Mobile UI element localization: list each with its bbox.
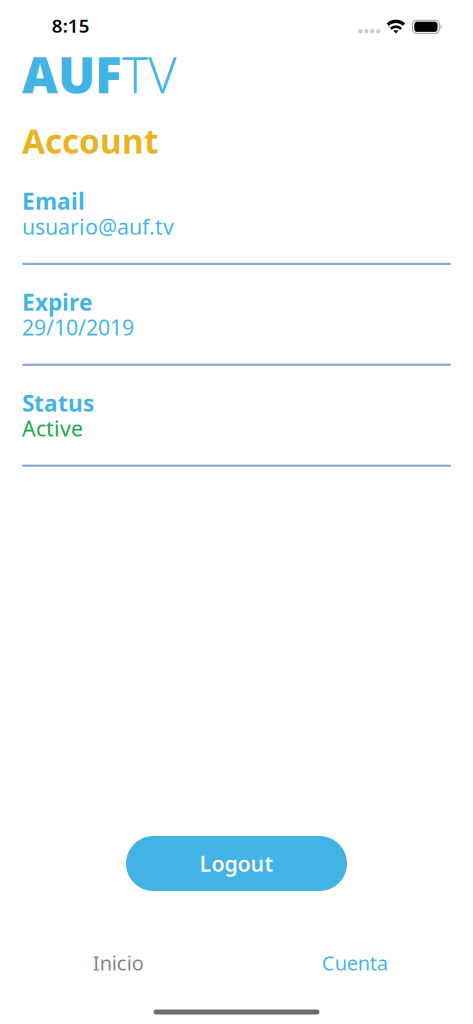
- button[interactable]: Logout: [126, 836, 347, 891]
- staticText: Cuenta: [322, 949, 388, 976]
- staticText: TV: [122, 41, 177, 107]
- staticText: Account: [22, 119, 158, 163]
- staticText: 29/10/2019: [22, 313, 134, 341]
- button[interactable]: Inicio: [0, 949, 236, 997]
- staticText: Inicio: [93, 949, 144, 976]
- staticText: Active: [22, 414, 83, 442]
- staticText: Logout: [199, 849, 273, 878]
- staticText: usuario@auf.tv: [22, 212, 174, 240]
- staticText: Expire: [22, 287, 93, 317]
- staticText: Status: [22, 388, 94, 418]
- staticText: 8:15: [52, 13, 90, 38]
- staticText: AUF: [22, 41, 122, 107]
- staticText: Email: [22, 186, 85, 216]
- button[interactable]: Cuenta: [236, 949, 473, 997]
